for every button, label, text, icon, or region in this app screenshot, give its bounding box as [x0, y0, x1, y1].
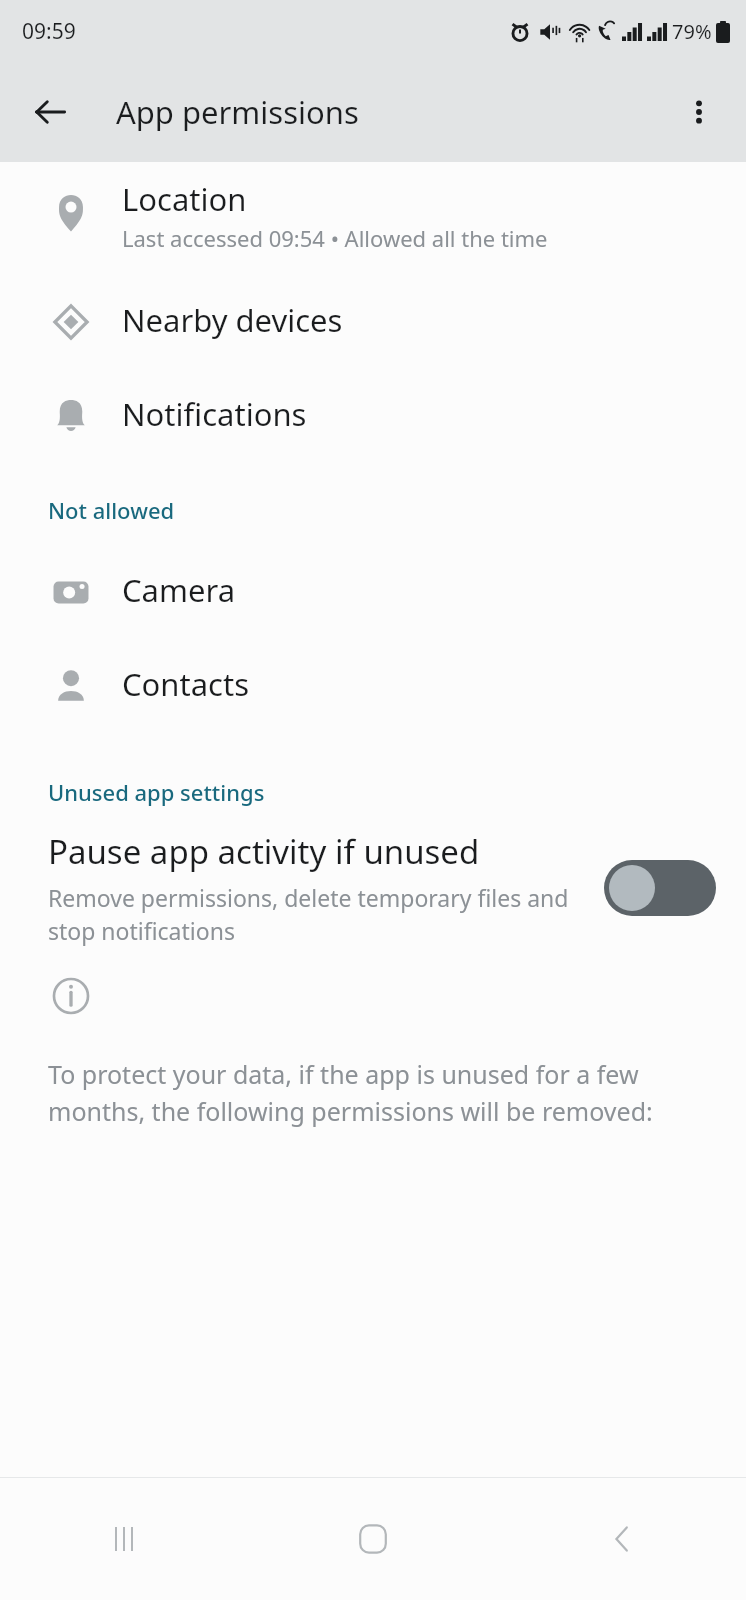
staticText: Contacts	[122, 663, 250, 705]
button[interactable]: Back	[497, 1478, 746, 1600]
staticText: 09:59	[22, 17, 76, 46]
staticText: Pause app activity if unused	[48, 829, 480, 874]
staticText: App permissions	[116, 91, 359, 133]
button[interactable]: Nearby devices	[0, 299, 746, 345]
button[interactable]: Pause app activity if unused	[0, 829, 746, 947]
staticText: Unused app settings	[48, 777, 265, 807]
button[interactable]: Home	[248, 1478, 497, 1600]
staticText: Nearby devices	[122, 299, 343, 341]
button[interactable]: More options	[670, 83, 728, 141]
button[interactable]: Pause app activity if unused	[604, 860, 716, 916]
staticText: Not allowed	[48, 495, 175, 525]
button[interactable]: Contacts	[0, 663, 746, 709]
button[interactable]: Recents	[0, 1478, 248, 1600]
staticText: Location	[122, 178, 247, 220]
staticText: Last accessed 09:54 • Allowed all the ti…	[122, 223, 548, 253]
button[interactable]: Notifications	[0, 393, 746, 439]
staticText: 79%	[672, 18, 712, 45]
staticText: Remove permissions, delete temporary fil…	[48, 882, 578, 947]
button[interactable]: Location	[0, 178, 746, 253]
button[interactable]: Back	[20, 82, 80, 142]
staticText: Camera	[122, 569, 236, 611]
button[interactable]: Camera	[0, 569, 746, 615]
staticText: Notifications	[122, 393, 307, 435]
staticText: To protect your data, if the app is unus…	[48, 1057, 712, 1128]
